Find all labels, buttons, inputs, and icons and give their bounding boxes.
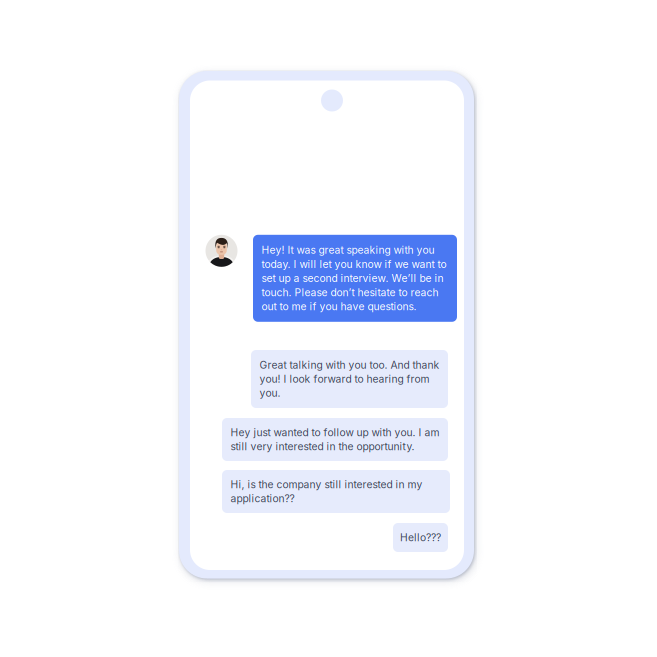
staticText: Hey! It was great speaking with you toda… [261, 244, 446, 313]
staticText: Great talking with you too. And thank yo… [259, 359, 439, 399]
button[interactable]: Hello??? [393, 523, 448, 552]
staticText: Hello??? [400, 531, 441, 544]
button[interactable]: Hey! It was great speaking with you toda… [253, 235, 457, 322]
button[interactable]: Recruiter profile photo [205, 235, 237, 267]
button[interactable]: Hey just wanted to follow up with you. I… [222, 418, 448, 461]
button[interactable]: Hi, is the company still interested in m… [222, 470, 450, 513]
staticText: Hi, is the company still interested in m… [230, 478, 422, 505]
staticText: Hey just wanted to follow up with you. I… [230, 426, 439, 453]
button[interactable]: Great talking with you too. And thank yo… [251, 350, 448, 408]
